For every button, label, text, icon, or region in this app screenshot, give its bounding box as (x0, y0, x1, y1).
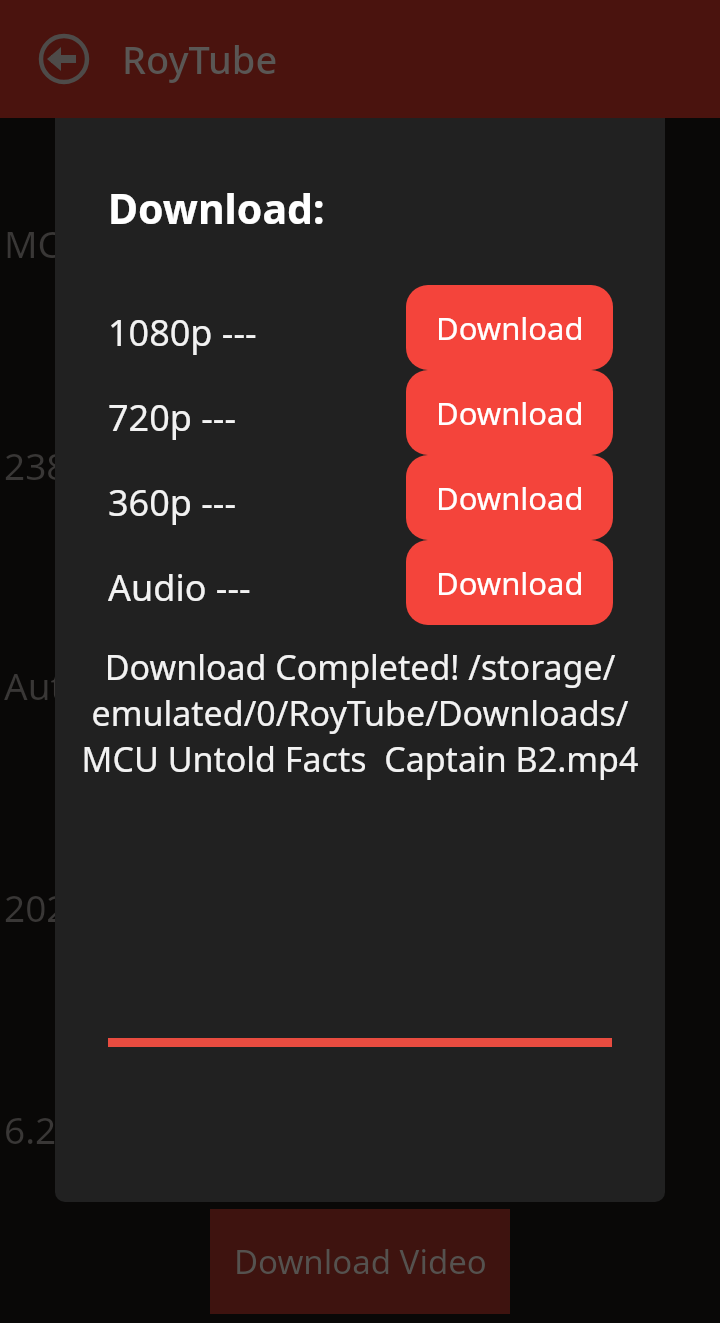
staticText: Download: (108, 180, 325, 236)
button[interactable]: Download (406, 285, 613, 370)
staticText: RoyTube (122, 33, 278, 85)
button[interactable]: Download Video (210, 1209, 510, 1314)
staticText: Auto (4, 660, 87, 710)
staticText: Download Video (234, 1239, 487, 1284)
button[interactable]: Download (406, 455, 613, 540)
staticText: 1080p --- (108, 308, 257, 357)
staticText: Audio --- (108, 563, 251, 612)
staticText: 6.2 (4, 1104, 57, 1154)
staticText: Download (436, 477, 584, 519)
staticText: Download Completed! /storage/emulated/0/… (64, 644, 656, 782)
button[interactable]: Download (406, 370, 613, 455)
staticText: 2024 (4, 882, 89, 932)
staticText: Download (436, 562, 584, 604)
staticText: 720p --- (108, 393, 237, 442)
staticText: Download (436, 307, 584, 349)
staticText: Download (436, 392, 584, 434)
staticText: 360p --- (108, 478, 237, 527)
button[interactable]: Download (406, 540, 613, 625)
staticText: 238 (4, 440, 68, 490)
staticText: MCU Untold Facts Captain B2 (4, 218, 522, 268)
button[interactable]: Back (36, 31, 92, 87)
